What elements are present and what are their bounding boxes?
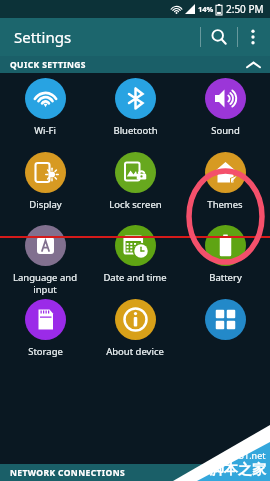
button[interactable]: Battery [180,225,270,284]
staticText: NETWORK CONNECTIONS [10,467,126,479]
button[interactable]: Display [0,152,90,211]
staticText: Display [29,198,62,211]
staticText: 2:50 PM [226,2,264,16]
button[interactable]: Bluetooth [90,78,180,137]
staticText: Battery [209,271,242,284]
staticText: Storage [28,345,63,358]
staticText: jb51.net [231,449,266,461]
staticText: Wi-Fi [34,124,56,137]
button[interactable]: Themes [180,152,270,211]
staticText: About device [106,345,164,358]
staticText: QUICK SETTINGS [10,59,86,71]
staticText: Language and input [13,271,77,295]
button[interactable]: Date and time [90,225,180,284]
button[interactable]: QUICK SETTINGS [0,56,270,73]
button[interactable]: Wi-Fi [0,78,90,137]
staticText: Settings [14,27,72,47]
button[interactable] [180,299,270,340]
button[interactable]: About device [90,299,180,358]
staticText: Themes [207,198,243,211]
staticText: Sound [211,124,240,137]
staticText: Date and time [103,271,167,284]
button[interactable]: More options [238,22,268,52]
staticText: Bluetooth [113,124,158,137]
staticText: 脚本之家 [210,461,266,479]
staticText: 14% [198,4,214,14]
button[interactable]: Language and input [0,225,90,295]
button[interactable]: Lock screen [90,152,180,211]
button[interactable]: Sound [180,78,270,137]
staticText: Lock screen [109,198,162,211]
button[interactable]: Storage [0,299,90,358]
button[interactable]: Search [201,19,237,55]
button[interactable]: NETWORK CONNECTIONS [0,464,270,481]
